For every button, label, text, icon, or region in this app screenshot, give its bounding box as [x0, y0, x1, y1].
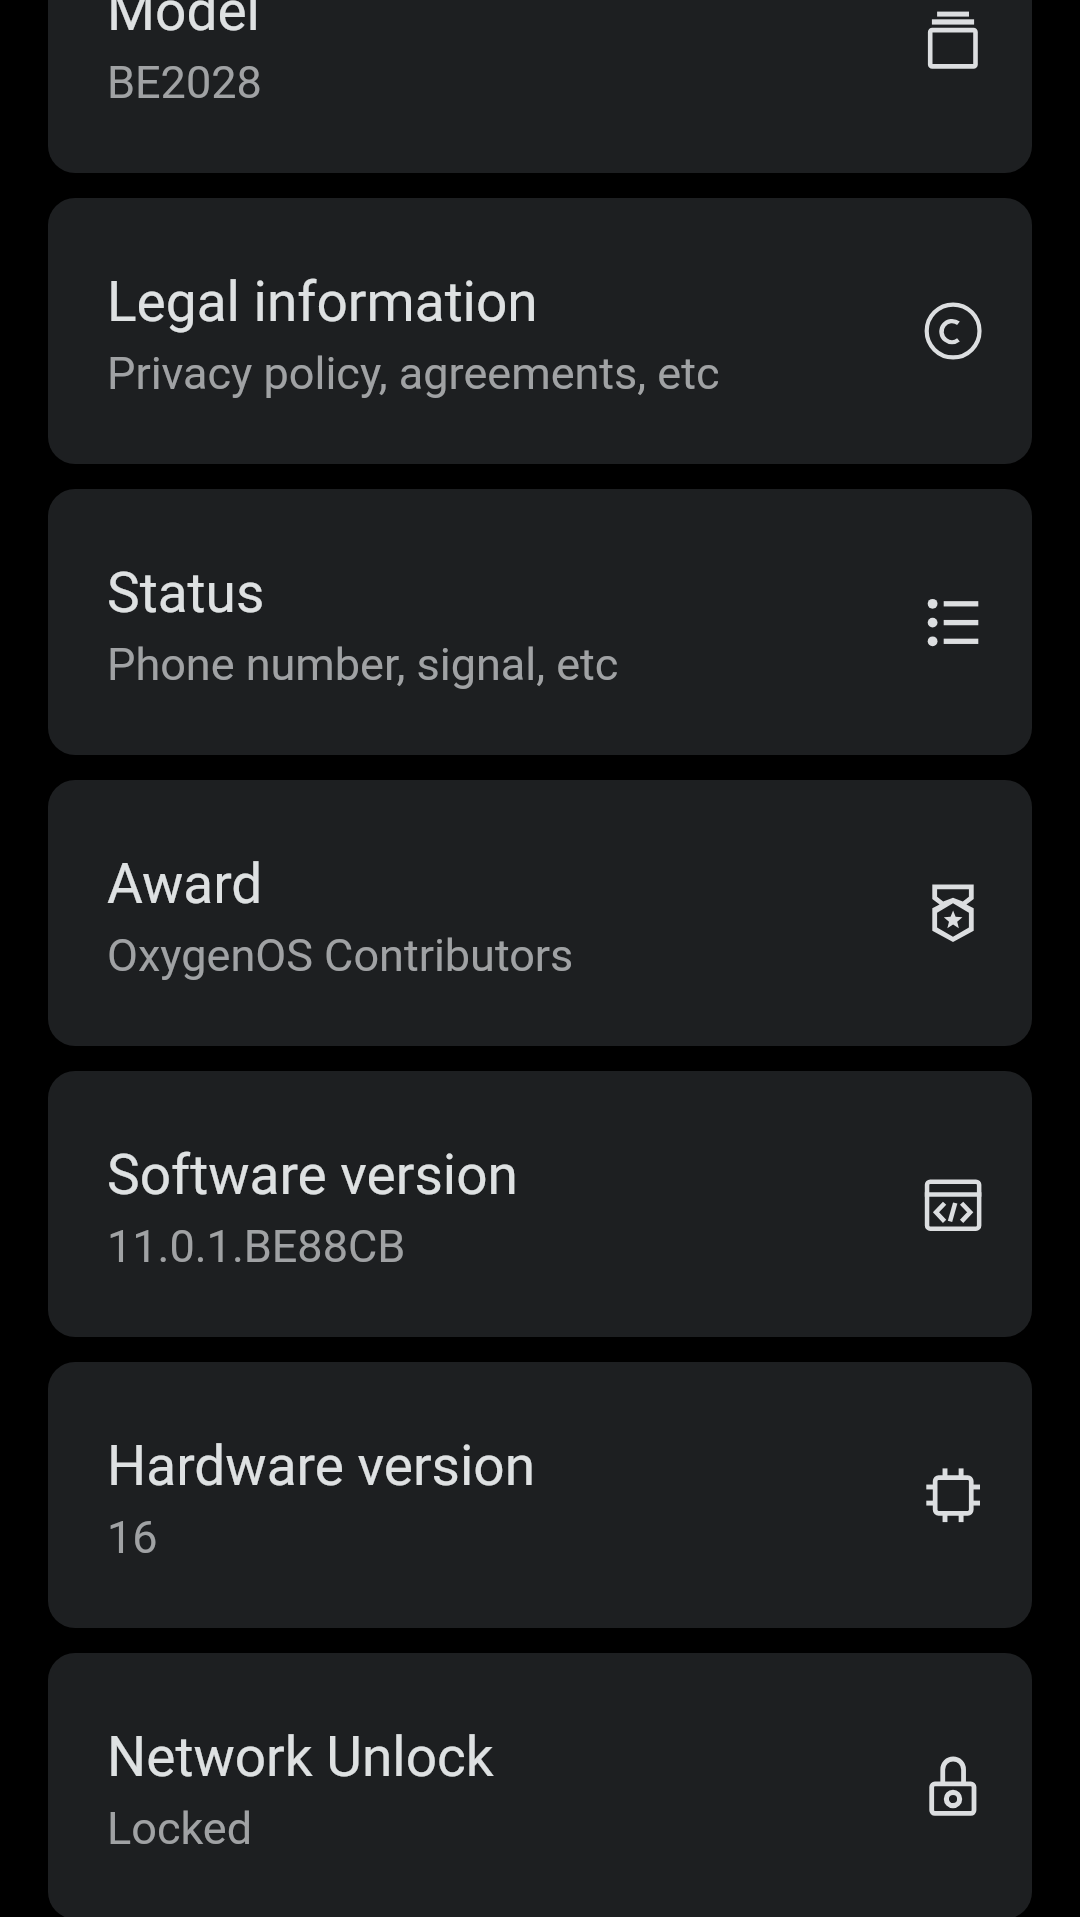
staticText: Hardware version	[107, 1434, 536, 1498]
other: Software version	[923, 1174, 983, 1234]
button[interactable]: Award	[48, 780, 1032, 1046]
staticText: Model	[107, 0, 260, 43]
button[interactable]: Model	[48, 0, 1032, 173]
staticText: Legal information	[107, 270, 538, 334]
staticText: OxygenOS Contributors	[107, 929, 574, 982]
button[interactable]: Status	[48, 489, 1032, 755]
staticText: Phone number, signal, etc	[107, 638, 619, 691]
staticText: Software version	[107, 1143, 518, 1207]
staticText: BE2028	[107, 56, 262, 109]
staticText: Status	[107, 561, 265, 625]
other: Network Unlock	[923, 1756, 983, 1816]
staticText: 16	[107, 1511, 158, 1564]
button[interactable]: Software version	[48, 1071, 1032, 1337]
staticText: Award	[107, 852, 263, 916]
staticText: Locked	[107, 1802, 253, 1855]
staticText: 11.0.1.BE88CB	[107, 1220, 406, 1273]
button[interactable]: Hardware version	[48, 1362, 1032, 1628]
other: Award	[923, 883, 983, 943]
staticText: Network Unlock	[107, 1725, 494, 1789]
other: Model	[923, 10, 983, 70]
other: Legal information	[923, 301, 983, 361]
button[interactable]: Network Unlock	[48, 1653, 1032, 1917]
button[interactable]: Legal information	[48, 198, 1032, 464]
other: Status	[923, 592, 983, 652]
other: Hardware version	[923, 1465, 983, 1525]
staticText: Privacy policy, agreements, etc	[107, 347, 720, 400]
